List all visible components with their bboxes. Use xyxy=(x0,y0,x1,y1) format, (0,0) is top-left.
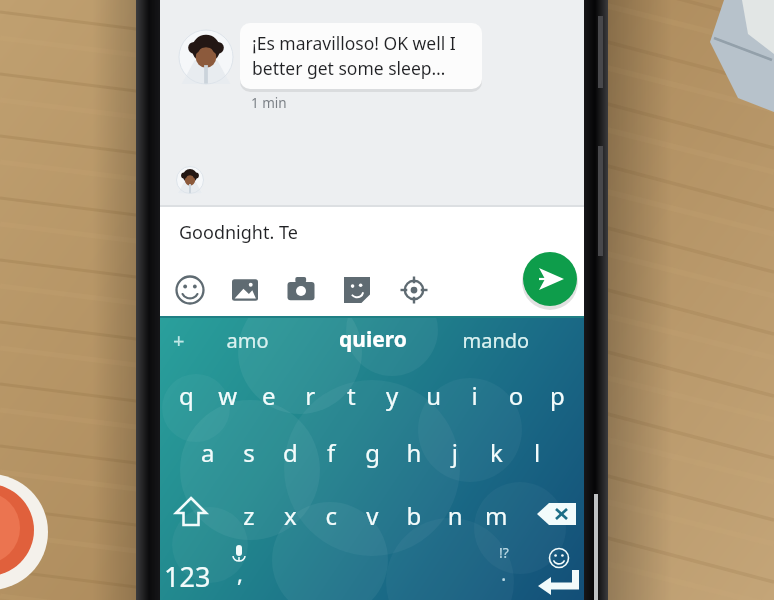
button[interactable]: More suggestions xyxy=(164,318,202,362)
button[interactable]: Insert sticker xyxy=(336,268,380,312)
button[interactable]: Send message xyxy=(517,246,583,312)
button[interactable]: Take photo xyxy=(280,268,324,312)
button[interactable]: Shift xyxy=(164,487,218,542)
button[interactable]: Backspace xyxy=(530,487,584,542)
button[interactable]: Message text field xyxy=(164,210,516,254)
button[interactable]: Share location xyxy=(392,268,436,312)
button[interactable]: Space xyxy=(262,543,490,600)
button[interactable]: Insert emoji xyxy=(168,268,212,312)
button[interactable]: Enter xyxy=(520,543,584,600)
button[interactable]: Suggestion quiero xyxy=(326,318,422,362)
button[interactable]: Insert image xyxy=(224,268,268,312)
button[interactable]: Suggestion amo xyxy=(206,318,294,362)
button[interactable]: Suggestion mando xyxy=(450,318,546,362)
button[interactable]: Numbers and symbols xyxy=(162,543,230,600)
